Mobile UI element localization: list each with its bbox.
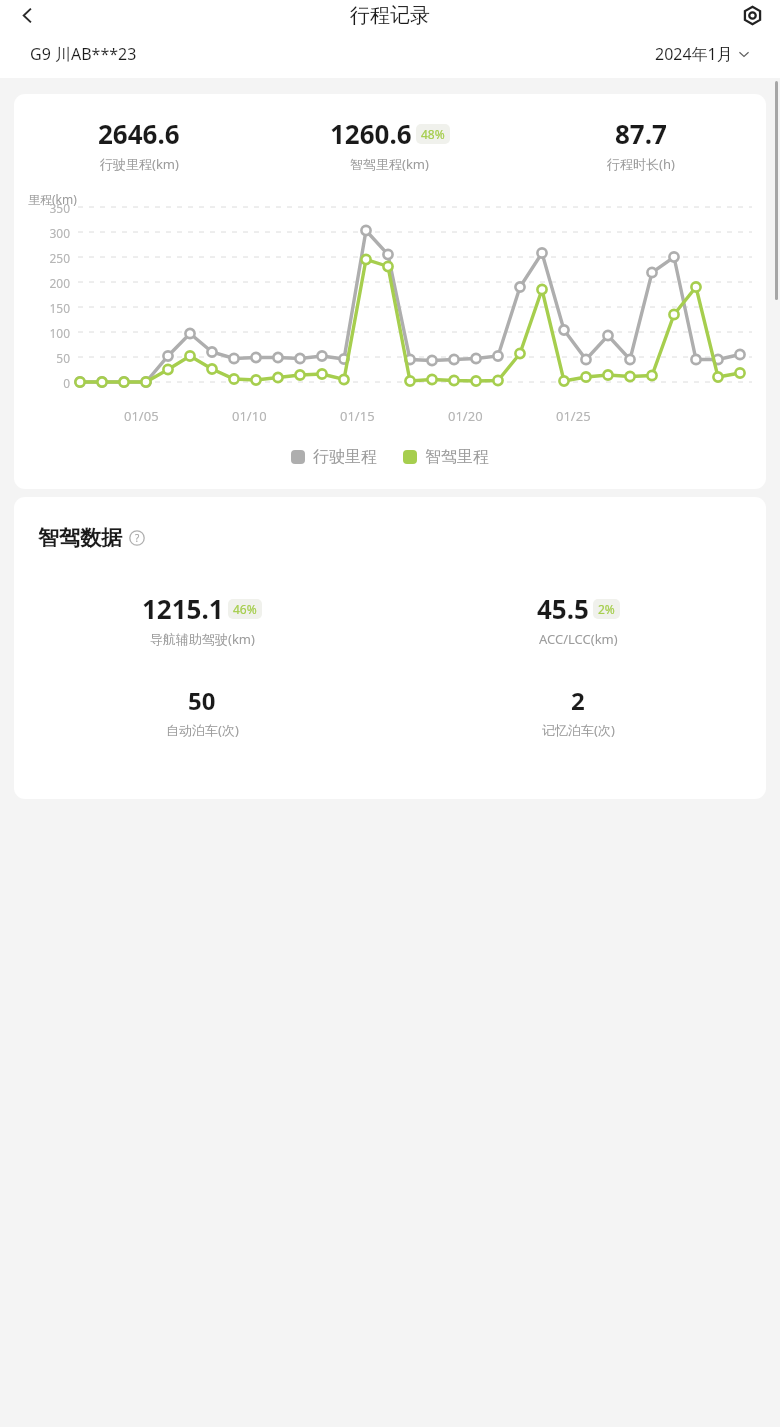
staticText: 350 (49, 200, 70, 216)
staticText: 01/15 (340, 407, 375, 425)
staticText: 48% (421, 126, 445, 142)
staticText: 01/10 (232, 407, 267, 425)
staticText: 自动泊车(次) (166, 721, 239, 739)
staticText: 2646.6 (98, 116, 180, 151)
staticText: 行驶里程(km) (100, 155, 179, 173)
button[interactable]: 行驶里程 (291, 447, 377, 467)
button[interactable]: Help (128, 529, 146, 547)
staticText: 50 (56, 350, 70, 366)
staticText: 2% (598, 601, 615, 617)
button[interactable]: Settings (738, 1, 766, 29)
staticText: 100 (49, 325, 70, 341)
staticText: 行程时长(h) (607, 155, 675, 173)
staticText: ACC/LCC(km) (539, 630, 618, 648)
staticText: 50 (188, 684, 216, 717)
button[interactable]: Back (13, 1, 41, 29)
staticText: 150 (49, 300, 70, 316)
staticText: 0 (63, 375, 70, 391)
staticText: 记忆泊车(次) (542, 721, 615, 739)
staticText: 2 (571, 684, 585, 717)
staticText: G9 川AB***23 (30, 43, 137, 65)
staticText: 里程(km) (28, 191, 77, 207)
staticText: 1260.6 (330, 116, 412, 151)
staticText: 行程记录 (350, 3, 430, 28)
staticText: 智驾数据 (38, 525, 122, 551)
staticText: 1215.1 (142, 591, 224, 626)
staticText: 2024年1月 (655, 43, 733, 65)
staticText: 300 (49, 225, 70, 241)
staticText: 87.7 (615, 116, 667, 151)
staticText: 250 (49, 250, 70, 266)
button[interactable]: 2024年1月 (655, 43, 750, 65)
staticText: 智驾里程 (425, 447, 489, 467)
staticText: 01/20 (448, 407, 483, 425)
staticText: 行驶里程 (313, 447, 377, 467)
staticText: 46% (233, 601, 257, 617)
staticText: 200 (49, 275, 70, 291)
staticText: 导航辅助驾驶(km) (150, 630, 255, 648)
staticText: ? (135, 531, 140, 545)
staticText: 45.5 (537, 591, 589, 626)
staticText: 01/05 (124, 407, 159, 425)
staticText: 智驾里程(km) (350, 155, 429, 173)
staticText: 01/25 (556, 407, 591, 425)
button[interactable]: 智驾里程 (403, 447, 489, 467)
